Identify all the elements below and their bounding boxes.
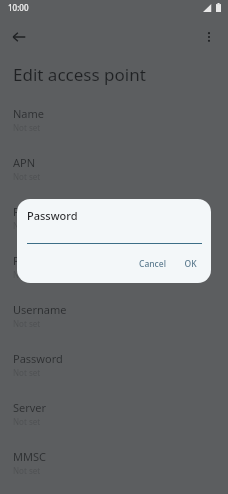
button[interactable]: Name [0, 100, 228, 139]
staticText: Cancel [139, 258, 166, 270]
staticText: Username [13, 302, 67, 317]
button[interactable]: OK [178, 255, 203, 273]
staticText: Not set [13, 416, 41, 427]
staticText: Not set [13, 318, 41, 329]
staticText: Not set [13, 367, 41, 378]
button[interactable]: APN [0, 149, 228, 188]
staticText: Password [13, 351, 63, 366]
button[interactable]: MMSC [0, 443, 228, 482]
staticText: Not set [13, 171, 41, 182]
button[interactable]: Password [0, 345, 228, 384]
button[interactable]: Username [0, 296, 228, 335]
staticText: OK [184, 258, 197, 270]
button[interactable]: Proxy [0, 198, 228, 237]
button[interactable]: Port [0, 247, 228, 286]
staticText: Not set [13, 465, 41, 476]
staticText: Password [27, 208, 78, 223]
staticText: Port [13, 253, 35, 268]
staticText: Name [13, 106, 45, 121]
button[interactable]: Server [0, 394, 228, 433]
button[interactable]: More options [196, 24, 222, 50]
staticText: Not set [13, 220, 41, 231]
staticText: 10:00 [8, 2, 29, 13]
staticText: Edit access point [13, 63, 146, 86]
staticText: Not set [13, 122, 41, 133]
button[interactable]: Back [6, 24, 32, 50]
staticText: Not set [13, 269, 41, 280]
staticText: Proxy [13, 204, 42, 219]
staticText: APN [13, 155, 36, 170]
staticText: MMSC [13, 449, 46, 464]
button[interactable]: Cancel [133, 255, 172, 273]
staticText: Server [13, 400, 47, 415]
